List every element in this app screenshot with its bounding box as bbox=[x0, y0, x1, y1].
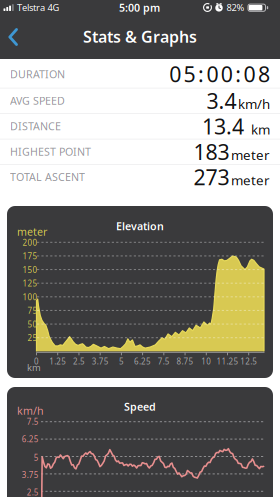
staticText: 6.25 bbox=[22, 434, 39, 444]
staticText: 3.4 bbox=[206, 86, 236, 115]
staticText: 75 bbox=[27, 305, 37, 316]
staticText: km bbox=[251, 120, 270, 138]
button[interactable]: Back bbox=[0, 22, 30, 52]
staticText: 2.5 bbox=[27, 487, 39, 497]
staticText: : bbox=[198, 60, 204, 88]
staticText: 0 bbox=[244, 60, 256, 88]
staticText: 0 bbox=[169, 60, 181, 88]
staticText: 5:00 pm bbox=[119, 0, 160, 15]
staticText: 4G bbox=[47, 1, 59, 14]
staticText: TOTAL ASCENT bbox=[10, 170, 85, 184]
staticText: 183 bbox=[193, 137, 229, 166]
staticText: 7.5 bbox=[27, 416, 39, 427]
staticText: 0 bbox=[34, 356, 39, 367]
staticText: 150 bbox=[22, 264, 37, 275]
staticText: 3.75 bbox=[22, 470, 39, 480]
staticText: Speed bbox=[124, 399, 156, 414]
staticText: AVG SPEED bbox=[10, 94, 65, 108]
staticText: km/h bbox=[17, 403, 44, 418]
staticText: : bbox=[235, 60, 241, 88]
staticText: 125 bbox=[22, 278, 37, 289]
staticText: 175 bbox=[22, 251, 37, 261]
staticText: 5 bbox=[119, 356, 124, 367]
staticText: 8.75 bbox=[177, 356, 194, 367]
staticText: 273 bbox=[193, 163, 229, 191]
staticText: 50 bbox=[27, 319, 37, 330]
staticText: Stats & Graphs bbox=[83, 26, 197, 47]
staticText: meter bbox=[17, 224, 47, 239]
staticText: 3.75 bbox=[92, 356, 109, 367]
staticText: 1.25 bbox=[49, 356, 66, 367]
staticText: km bbox=[27, 361, 41, 374]
staticText: 5 bbox=[184, 60, 196, 88]
staticText: 2.5 bbox=[73, 356, 85, 367]
staticText: 7.5 bbox=[158, 356, 170, 367]
staticText: Elevation bbox=[116, 219, 164, 233]
staticText: 11.25 bbox=[216, 356, 238, 367]
staticText: HIGHEST POINT bbox=[10, 144, 91, 159]
staticText: DURATION bbox=[10, 67, 65, 81]
staticText: 0 bbox=[206, 60, 218, 88]
staticText: meter bbox=[231, 146, 270, 164]
staticText: 12.5 bbox=[240, 356, 257, 367]
staticText: 13.4 bbox=[202, 112, 244, 140]
staticText: 0 bbox=[221, 60, 233, 88]
staticText: 8 bbox=[258, 60, 270, 88]
staticText: 10 bbox=[201, 356, 211, 367]
staticText: 25 bbox=[27, 333, 37, 343]
staticText: 200 bbox=[22, 237, 37, 248]
staticText: 6.25 bbox=[134, 356, 151, 367]
staticText: Telstra bbox=[17, 1, 45, 14]
staticText: 82% bbox=[226, 1, 244, 14]
staticText: 100 bbox=[22, 292, 37, 302]
staticText: 5 bbox=[34, 452, 39, 463]
staticText: km/h bbox=[238, 95, 270, 113]
staticText: meter bbox=[231, 171, 270, 189]
staticText: DISTANCE bbox=[10, 119, 61, 133]
